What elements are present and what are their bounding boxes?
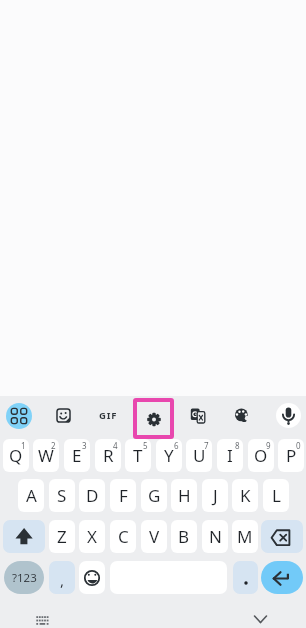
button[interactable]: M: [232, 520, 258, 553]
staticText: 3: [82, 440, 87, 451]
button[interactable]: [276, 403, 301, 428]
staticText: Y: [164, 444, 174, 467]
button[interactable]: Y: [156, 439, 182, 472]
staticText: 5: [143, 440, 148, 451]
button[interactable]: J: [202, 479, 228, 512]
button[interactable]: R: [95, 439, 121, 472]
button[interactable]: [190, 407, 206, 423]
staticText: Z: [57, 525, 67, 548]
button[interactable]: B: [171, 520, 197, 553]
staticText: F: [119, 484, 128, 507]
button[interactable]: [261, 520, 303, 553]
button[interactable]: [233, 561, 258, 594]
staticText: 4: [113, 440, 118, 451]
staticText: ,: [60, 570, 65, 590]
staticText: 7: [204, 440, 209, 451]
button[interactable]: GIF: [96, 405, 120, 425]
button[interactable]: F: [110, 479, 136, 512]
button[interactable]: W: [33, 439, 59, 472]
staticText: Q: [9, 444, 23, 467]
button[interactable]: [250, 610, 271, 628]
button[interactable]: P: [278, 439, 304, 472]
button[interactable]: [79, 561, 105, 594]
button[interactable]: [133, 398, 174, 439]
staticText: K: [240, 484, 251, 507]
staticText: ?123: [12, 570, 37, 586]
staticText: D: [86, 484, 99, 507]
staticText: E: [72, 444, 82, 467]
button[interactable]: V: [141, 520, 167, 553]
button[interactable]: N: [202, 520, 228, 553]
button[interactable]: D: [79, 479, 105, 512]
staticText: O: [254, 444, 268, 467]
staticText: 0: [296, 440, 301, 451]
staticText: X: [87, 525, 97, 548]
staticText: U: [193, 444, 206, 467]
staticText: G: [148, 484, 161, 507]
button[interactable]: [6, 403, 32, 429]
button[interactable]: E: [64, 439, 90, 472]
staticText: 1: [21, 440, 26, 451]
button[interactable]: S: [49, 479, 75, 512]
button[interactable]: U: [186, 439, 212, 472]
button[interactable]: H: [171, 479, 197, 512]
staticText: L: [272, 484, 281, 507]
staticText: 8: [235, 440, 240, 451]
staticText: V: [149, 525, 160, 548]
button[interactable]: ?123: [4, 561, 44, 594]
button[interactable]: L: [263, 479, 289, 512]
staticText: 2: [51, 440, 56, 451]
button[interactable]: [3, 520, 45, 553]
button[interactable]: I: [217, 439, 243, 472]
button[interactable]: G: [141, 479, 167, 512]
staticText: J: [213, 484, 218, 507]
button[interactable]: Z: [49, 520, 75, 553]
button[interactable]: K: [232, 479, 258, 512]
staticText: B: [178, 525, 190, 548]
button[interactable]: [261, 561, 303, 594]
staticText: 9: [266, 440, 271, 451]
staticText: W: [38, 444, 54, 467]
button[interactable]: [34, 613, 51, 628]
staticText: M: [237, 525, 253, 548]
staticText: R: [103, 444, 114, 467]
button[interactable]: Q: [3, 439, 29, 472]
staticText: H: [178, 484, 191, 507]
staticText: S: [57, 484, 67, 507]
button[interactable]: T: [125, 439, 151, 472]
button[interactable]: X: [79, 520, 105, 553]
staticText: GIF: [99, 409, 118, 422]
staticText: 6: [174, 440, 179, 451]
staticText: N: [209, 525, 222, 548]
staticText: A: [26, 484, 37, 507]
staticText: P: [286, 444, 297, 467]
button[interactable]: O: [248, 439, 274, 472]
button[interactable]: [233, 407, 250, 424]
button[interactable]: C: [110, 520, 136, 553]
staticText: T: [133, 444, 143, 467]
button[interactable]: A: [18, 479, 44, 512]
button[interactable]: [56, 408, 71, 423]
staticText: I: [227, 444, 233, 467]
staticText: C: [118, 525, 129, 548]
button[interactable]: ,: [49, 561, 75, 594]
